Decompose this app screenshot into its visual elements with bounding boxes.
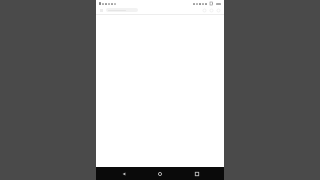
button[interactable]: Home — [151, 167, 169, 180]
button[interactable] — [106, 8, 138, 12]
button[interactable]: More options — [216, 8, 221, 13]
button[interactable]: Filter — [209, 8, 214, 13]
button[interactable]: Search — [202, 8, 207, 13]
button[interactable]: Menu — [99, 8, 104, 13]
button[interactable]: Back — [115, 167, 133, 180]
button[interactable]: Recent apps — [188, 167, 206, 180]
